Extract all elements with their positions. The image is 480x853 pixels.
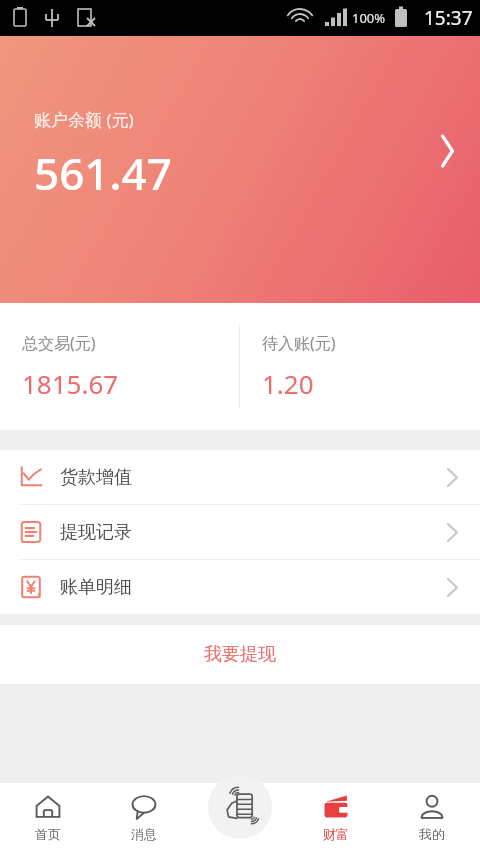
staticText: 1.20 <box>262 366 314 401</box>
staticText: 我的 <box>419 826 445 842</box>
button[interactable]: 财富 <box>288 783 384 853</box>
staticText: 1815.67 <box>22 366 119 401</box>
staticText: 账户余额 (元) <box>34 108 134 131</box>
button[interactable]: 待入账(元) <box>262 332 480 401</box>
staticText: 待入账(元) <box>262 332 336 354</box>
button[interactable]: 账户余额 (元) <box>0 36 480 303</box>
button[interactable]: 货款增值 <box>0 450 480 504</box>
other: Balance detail <box>438 136 456 166</box>
staticText: 首页 <box>35 826 61 842</box>
staticText: 我要提现 <box>204 643 276 666</box>
button[interactable]: 我要提现 <box>0 625 480 684</box>
staticText: 561.47 <box>34 143 172 203</box>
button[interactable]: Pay <box>208 775 272 839</box>
staticText: 15:37 <box>424 5 473 31</box>
staticText: 账单明细 <box>60 576 132 599</box>
button[interactable]: 消息 <box>96 783 192 853</box>
staticText: 100% <box>352 9 386 27</box>
button[interactable]: 账单明细 <box>0 560 480 614</box>
button[interactable]: 总交易(元) <box>22 332 239 401</box>
staticText: 财富 <box>323 826 349 842</box>
staticText: 总交易(元) <box>22 332 96 354</box>
staticText: 货款增值 <box>60 466 132 489</box>
button[interactable]: 首页 <box>0 783 96 853</box>
staticText: 提现记录 <box>60 521 132 544</box>
button[interactable]: 提现记录 <box>0 505 480 559</box>
staticText: 消息 <box>131 826 157 842</box>
button[interactable]: 我的 <box>384 783 480 853</box>
